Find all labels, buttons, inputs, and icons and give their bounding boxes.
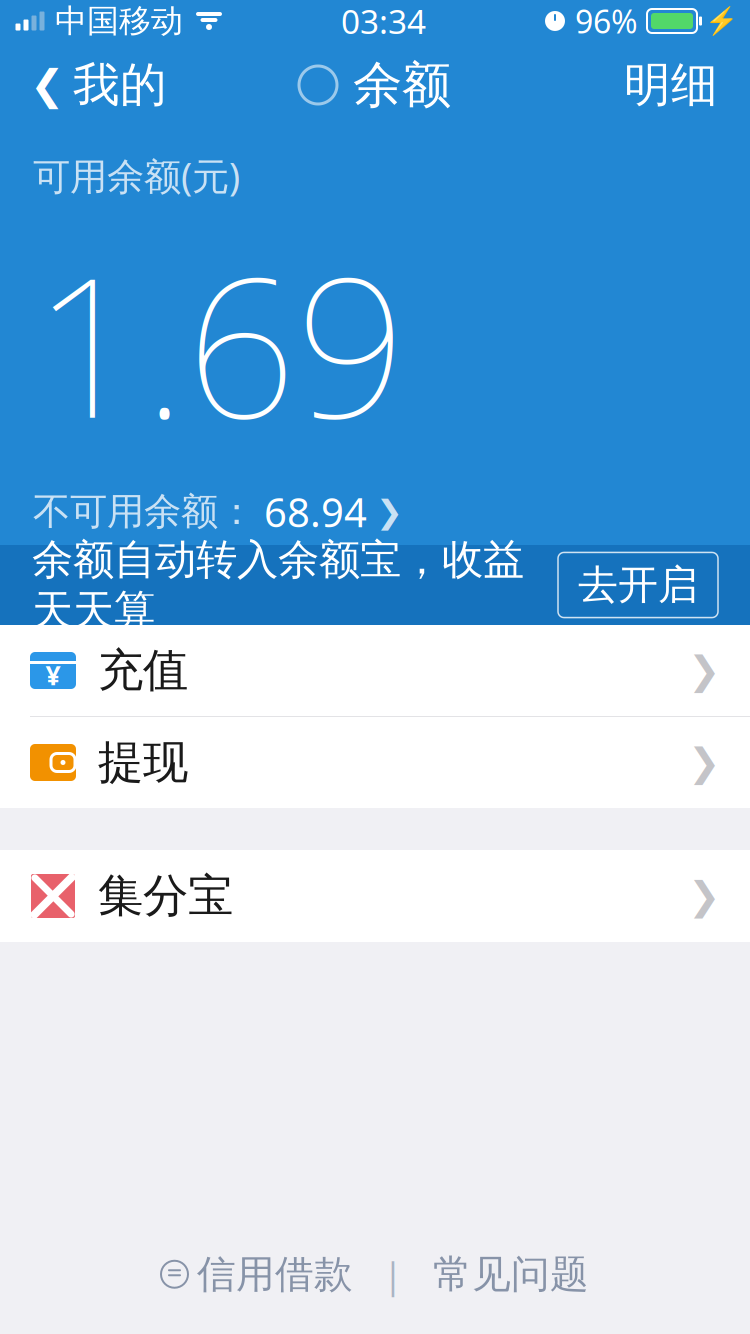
staticText: 明细 <box>624 56 718 114</box>
staticText: 信用借款 <box>197 1250 353 1298</box>
staticText: 去开启 <box>578 560 698 609</box>
staticText: 集分宝 <box>98 868 233 924</box>
button[interactable]: 集分宝 <box>0 850 750 942</box>
staticText: 余额 <box>353 55 451 115</box>
staticText: ¥ <box>45 657 60 693</box>
staticText: 68.94 <box>264 485 367 538</box>
button[interactable]: 提现 <box>0 717 750 808</box>
staticText: 常见问题 <box>433 1250 589 1298</box>
button[interactable]: 明细 <box>606 44 736 126</box>
staticText: 余额自动转入余额宝，收益天天算 <box>32 534 524 636</box>
staticText: ⚡ <box>705 6 738 36</box>
staticText: ❮ <box>30 61 65 108</box>
button[interactable]: 常见问题 <box>427 1240 595 1308</box>
button[interactable]: ¥ <box>0 625 750 716</box>
staticText: 不可用余额： <box>33 489 255 535</box>
button[interactable]: ❮ <box>14 44 183 126</box>
staticText: ❯ <box>688 649 720 692</box>
staticText: 中国移动 <box>55 1 183 41</box>
staticText: ❯ <box>688 874 720 918</box>
staticText: ❯ <box>376 493 403 530</box>
button[interactable]: 去开启 <box>558 552 718 617</box>
staticText: 可用余额(元) <box>33 151 240 200</box>
button[interactable]: 信用借款 <box>155 1240 359 1308</box>
staticText: 我的 <box>73 56 167 114</box>
staticText: 03:34 <box>341 0 426 43</box>
staticText: 提现 <box>98 735 188 790</box>
button[interactable]: 不可用余额： <box>33 479 403 544</box>
staticText: ❯ <box>688 741 720 784</box>
staticText: 96% <box>575 0 638 42</box>
staticText: 1.69 <box>33 214 406 471</box>
staticText: 充值 <box>98 643 188 698</box>
staticText: | <box>383 1250 403 1298</box>
